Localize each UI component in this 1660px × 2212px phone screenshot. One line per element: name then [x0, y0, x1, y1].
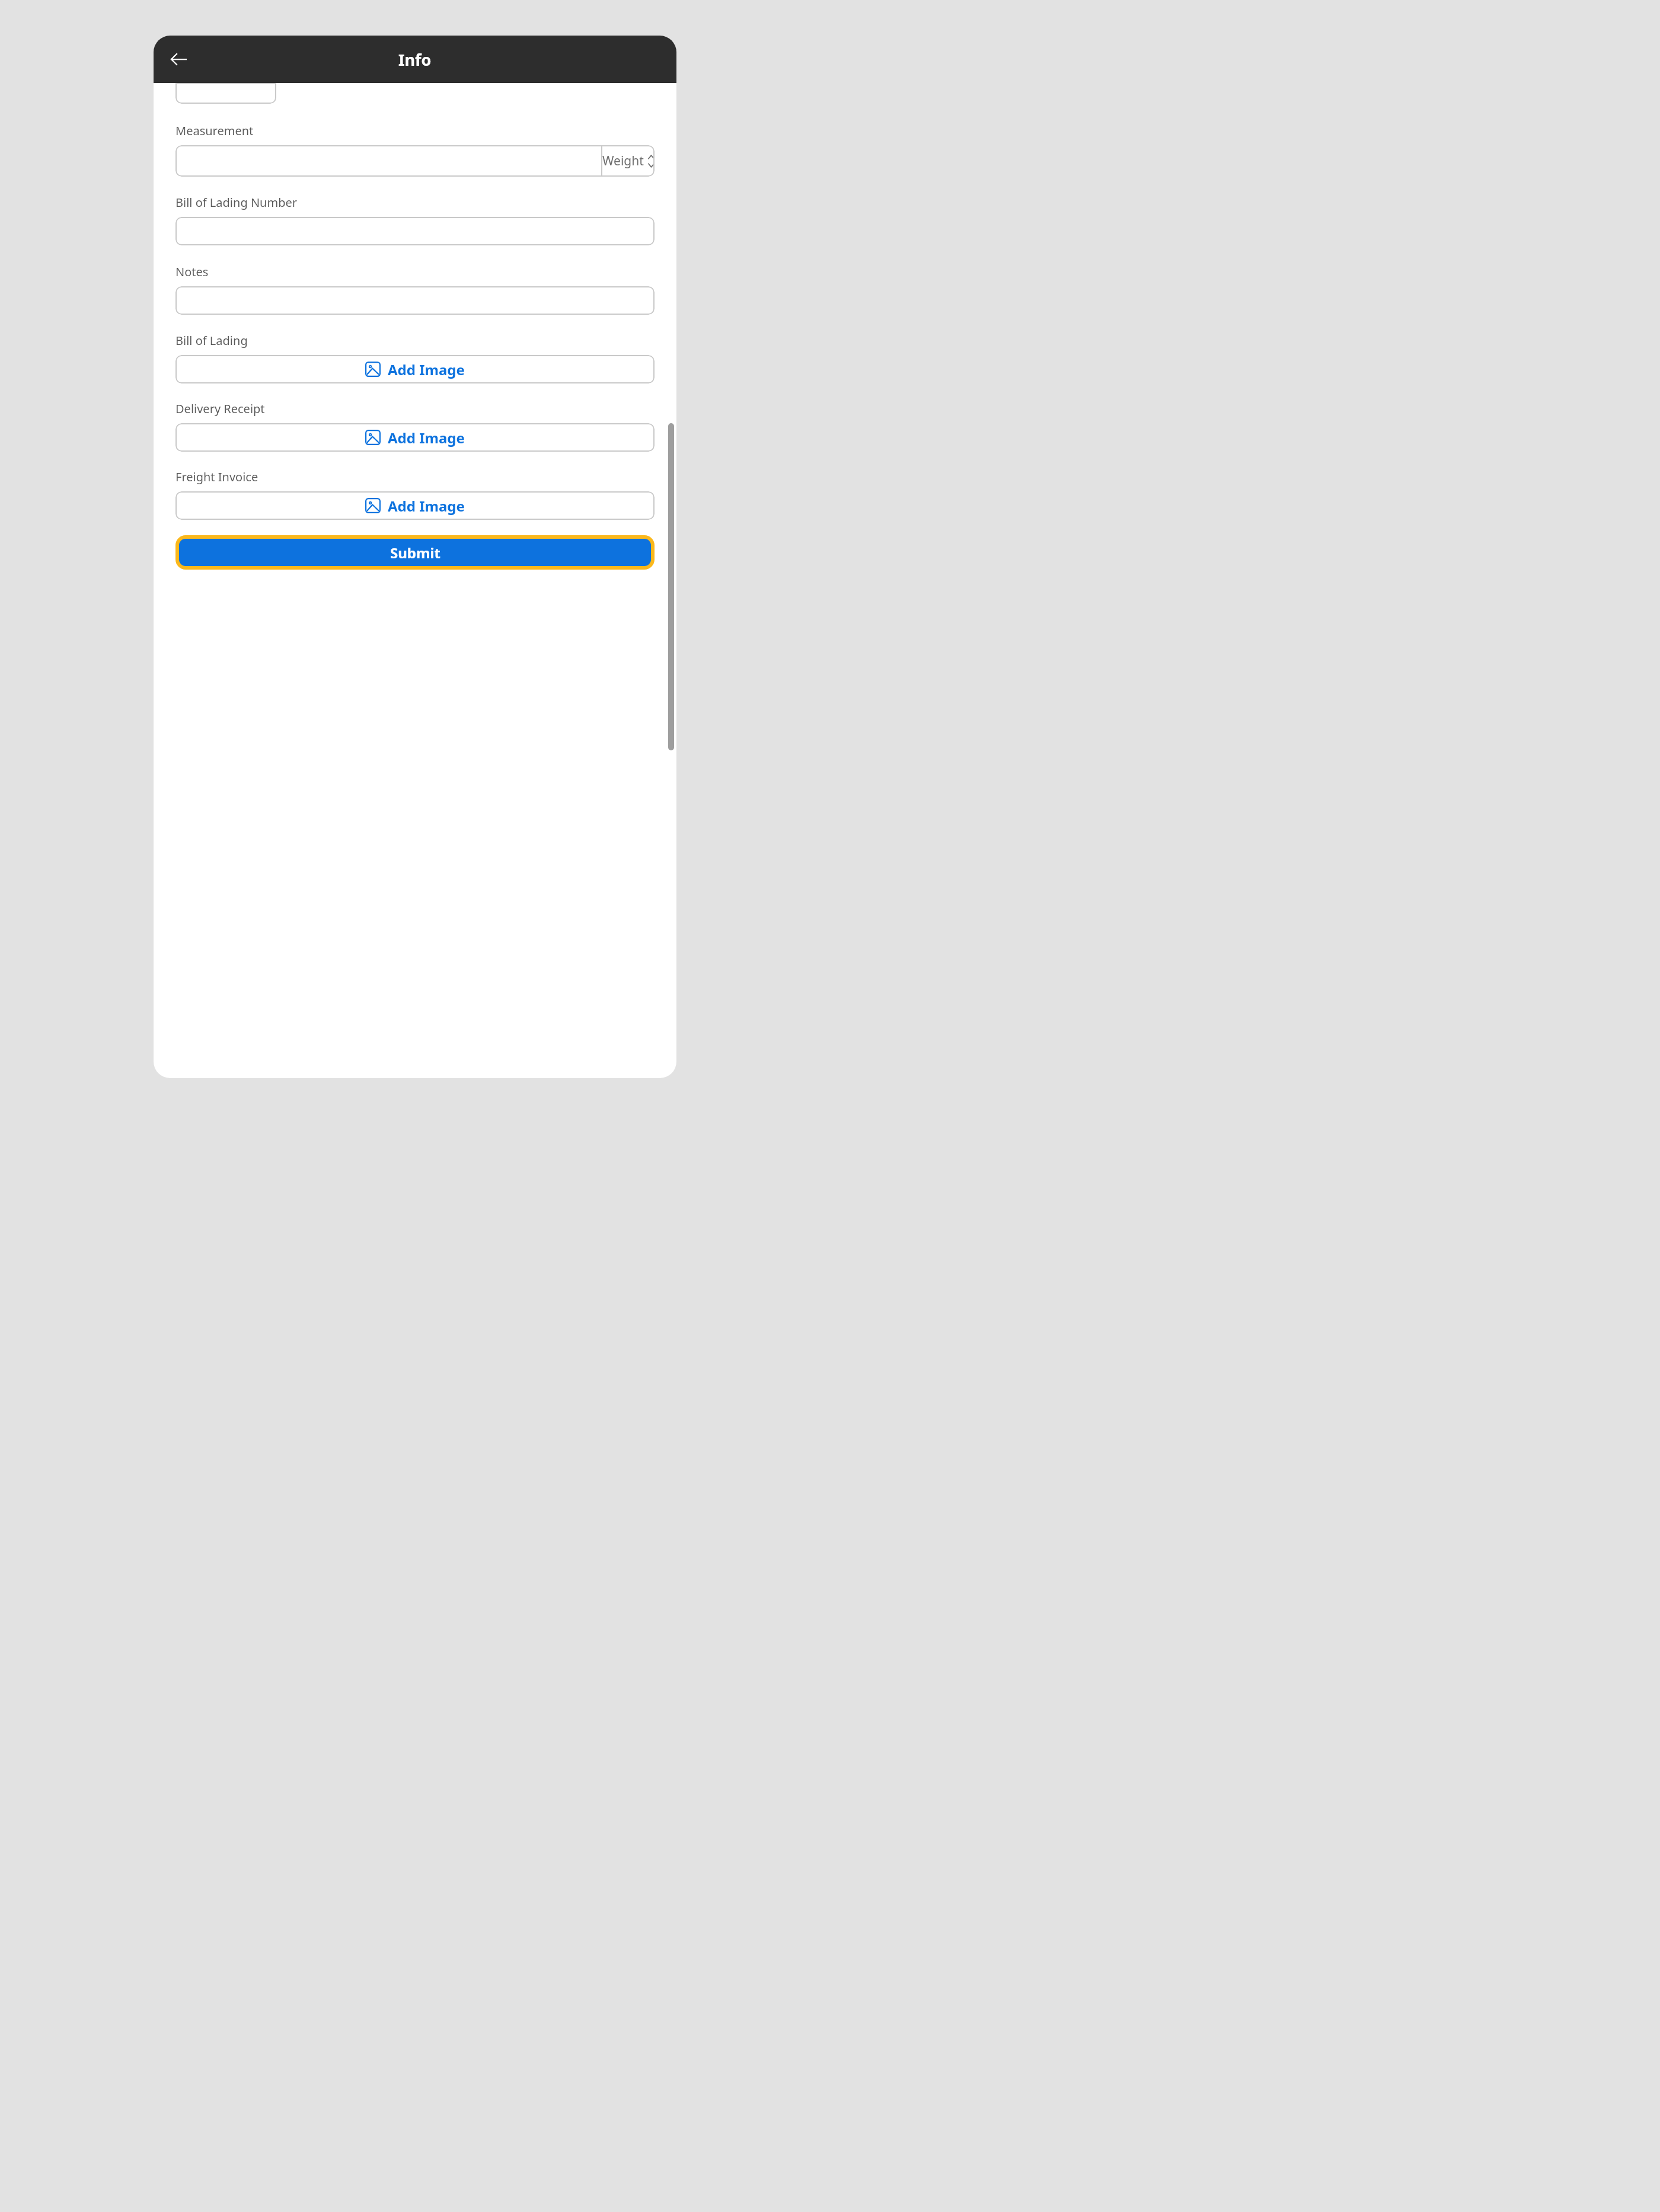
button[interactable]: Weight unit selector	[602, 145, 655, 177]
button[interactable]: Back	[162, 43, 195, 76]
staticText: Bill of Lading	[175, 333, 248, 349]
staticText: Submit	[390, 543, 440, 562]
button[interactable]	[175, 83, 276, 104]
button[interactable]: Add Image	[175, 355, 655, 383]
staticText: Weight	[602, 152, 644, 170]
staticText: Measurement	[175, 123, 254, 139]
staticText: Info	[398, 49, 432, 71]
button[interactable]: Submit	[179, 539, 651, 566]
staticText: Notes	[175, 264, 209, 280]
staticText: Add Image	[388, 428, 465, 447]
button[interactable]	[175, 217, 655, 245]
staticText: Add Image	[388, 496, 465, 516]
staticText: Delivery Receipt	[175, 401, 265, 417]
button[interactable]: Add Image	[175, 423, 655, 452]
staticText: Add Image	[388, 360, 465, 379]
staticText: Bill of Lading Number	[175, 194, 297, 210]
button[interactable]	[175, 286, 655, 315]
button[interactable]	[175, 145, 601, 177]
staticText: Freight Invoice	[175, 469, 258, 485]
button[interactable]: Add Image	[175, 491, 655, 520]
